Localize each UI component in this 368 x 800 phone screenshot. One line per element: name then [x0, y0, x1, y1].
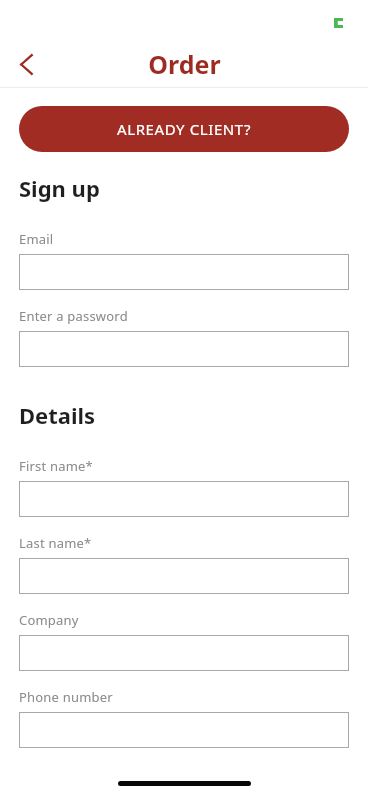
staticText: Company [19, 611, 79, 629]
button[interactable]: Text input [19, 331, 349, 367]
staticText: ALREADY CLIENT? [117, 119, 252, 139]
staticText: Email [19, 230, 54, 248]
button[interactable]: Text input [19, 558, 349, 594]
button[interactable]: Text input [19, 481, 349, 517]
staticText: Order [148, 47, 221, 81]
staticText: Details [19, 400, 96, 430]
button[interactable]: Text input [19, 635, 349, 671]
button[interactable]: ALREADY CLIENT? [19, 106, 349, 152]
staticText: First name* [19, 457, 93, 475]
button[interactable]: Back [8, 46, 44, 82]
staticText: Last name* [19, 534, 92, 552]
staticText: Phone number [19, 688, 113, 706]
button[interactable]: Text input [19, 712, 349, 748]
staticText: Enter a password [19, 307, 128, 325]
staticText: Sign up [19, 173, 100, 203]
button[interactable]: Text input [19, 254, 349, 290]
